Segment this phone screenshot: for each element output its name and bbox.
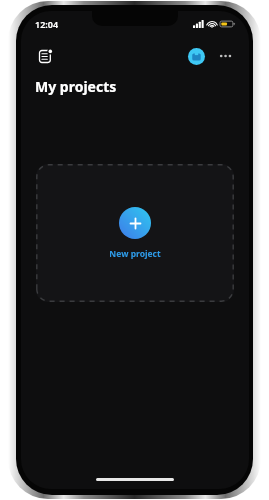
button[interactable]: New project <box>119 207 151 239</box>
button[interactable]: New project <box>36 164 234 302</box>
staticText: My projects <box>35 77 117 96</box>
button[interactable]: Feedback <box>32 43 58 69</box>
staticText: New project <box>109 248 161 260</box>
button[interactable]: More options <box>214 44 238 68</box>
button[interactable]: Account <box>184 44 208 68</box>
staticText: 12:04 <box>35 18 59 30</box>
